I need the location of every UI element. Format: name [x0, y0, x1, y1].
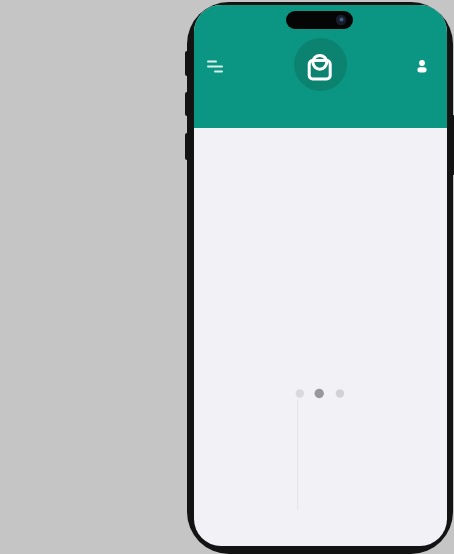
button[interactable]	[199, 52, 231, 84]
button[interactable]	[409, 54, 435, 80]
button[interactable]	[294, 38, 347, 91]
